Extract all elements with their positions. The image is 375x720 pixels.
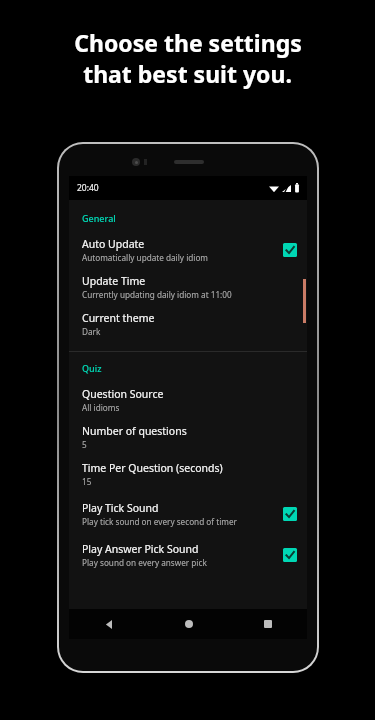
staticText: 15 [82,476,92,487]
button[interactable]: Toggle Auto Update [283,243,297,257]
button[interactable]: Update Time [69,268,307,305]
staticText: that best suit you. [83,58,292,89]
staticText: Quiz [82,362,102,374]
staticText: 5 [82,439,87,450]
staticText: Play tick sound on every second of timer [82,516,237,527]
staticText: Play Answer Pick Sound [82,542,199,556]
staticText: Question Source [82,387,164,401]
button[interactable]: Back [69,609,149,639]
button[interactable]: Recent apps [228,609,307,639]
button[interactable]: Toggle Play Tick Sound [283,507,297,521]
button[interactable]: Current theme [69,305,307,342]
button[interactable]: Toggle Play Answer Pick Sound [283,548,297,562]
button[interactable]: Play Answer Pick Sound [69,536,307,573]
staticText: General [82,212,116,224]
staticText: Automatically update daily idiom [82,252,209,263]
button[interactable]: Time Per Question (seconds) [69,455,307,492]
button[interactable]: Play Tick Sound [69,492,307,536]
staticText: Update Time [82,274,146,288]
button[interactable]: Auto Update [69,231,307,268]
staticText: Time Per Question (seconds) [82,461,223,475]
staticText: Play sound on every answer pick [82,557,207,568]
staticText: Auto Update [82,237,145,251]
staticText: All idioms [82,402,120,413]
staticText: Current theme [82,311,155,325]
staticText: Currently updating daily idiom at 11:00 [82,289,232,300]
staticText: 20:40 [77,182,99,194]
staticText: Choose the settings [74,27,302,58]
staticText: Play Tick Sound [82,501,159,515]
button[interactable]: Number of questions [69,418,307,455]
staticText: Dark [82,326,101,337]
button[interactable]: Home [149,609,228,639]
button[interactable]: Question Source [69,381,307,418]
staticText: Number of questions [82,424,187,438]
